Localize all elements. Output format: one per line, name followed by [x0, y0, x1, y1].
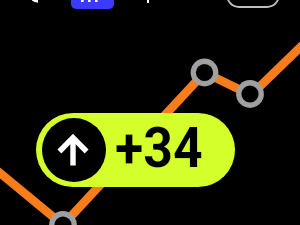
button[interactable]: +34: [36, 113, 235, 187]
button[interactable]: Month chip: [132, 0, 172, 3]
button[interactable]: Week chip, selected: [71, 0, 114, 9]
button[interactable]: Day chip: [26, 0, 66, 3]
staticText: +34: [115, 115, 203, 181]
button[interactable]: Year chip: [226, 0, 280, 8]
